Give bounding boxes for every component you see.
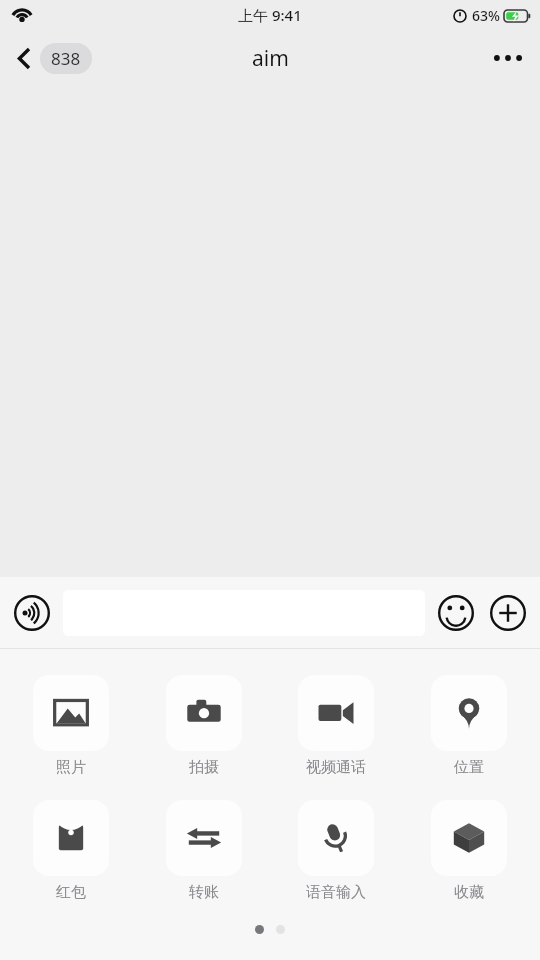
button[interactable]: 位置 — [430, 675, 508, 777]
staticText: 视频通话 — [306, 758, 366, 777]
staticText: 语音输入 — [306, 883, 366, 902]
staticText: 收藏 — [454, 883, 484, 902]
button[interactable]: 视频通话 — [297, 675, 375, 777]
button[interactable]: 转账 — [165, 800, 243, 902]
staticText: aim — [252, 44, 289, 73]
staticText: 上午 9:41 — [238, 5, 302, 25]
button[interactable]: Emoji — [438, 595, 474, 631]
button[interactable]: 收藏 — [430, 800, 508, 902]
button[interactable]: 语音输入 — [297, 800, 375, 902]
button[interactable]: 照片 — [32, 675, 110, 777]
staticText: 位置 — [454, 758, 484, 777]
button[interactable]: 拍摄 — [165, 675, 243, 777]
staticText: 63% — [472, 6, 500, 25]
staticText: 转账 — [189, 883, 219, 902]
button[interactable]: 红包 — [32, 800, 110, 902]
button[interactable]: Voice input — [14, 595, 50, 631]
button[interactable]: Back, 838 unread — [0, 37, 102, 80]
staticText: 红包 — [56, 883, 86, 902]
button[interactable]: More options — [476, 39, 540, 77]
staticText: 照片 — [56, 758, 86, 777]
staticText: 拍摄 — [189, 758, 219, 777]
staticText: 838 — [51, 47, 81, 70]
button[interactable]: More functions — [490, 595, 526, 631]
